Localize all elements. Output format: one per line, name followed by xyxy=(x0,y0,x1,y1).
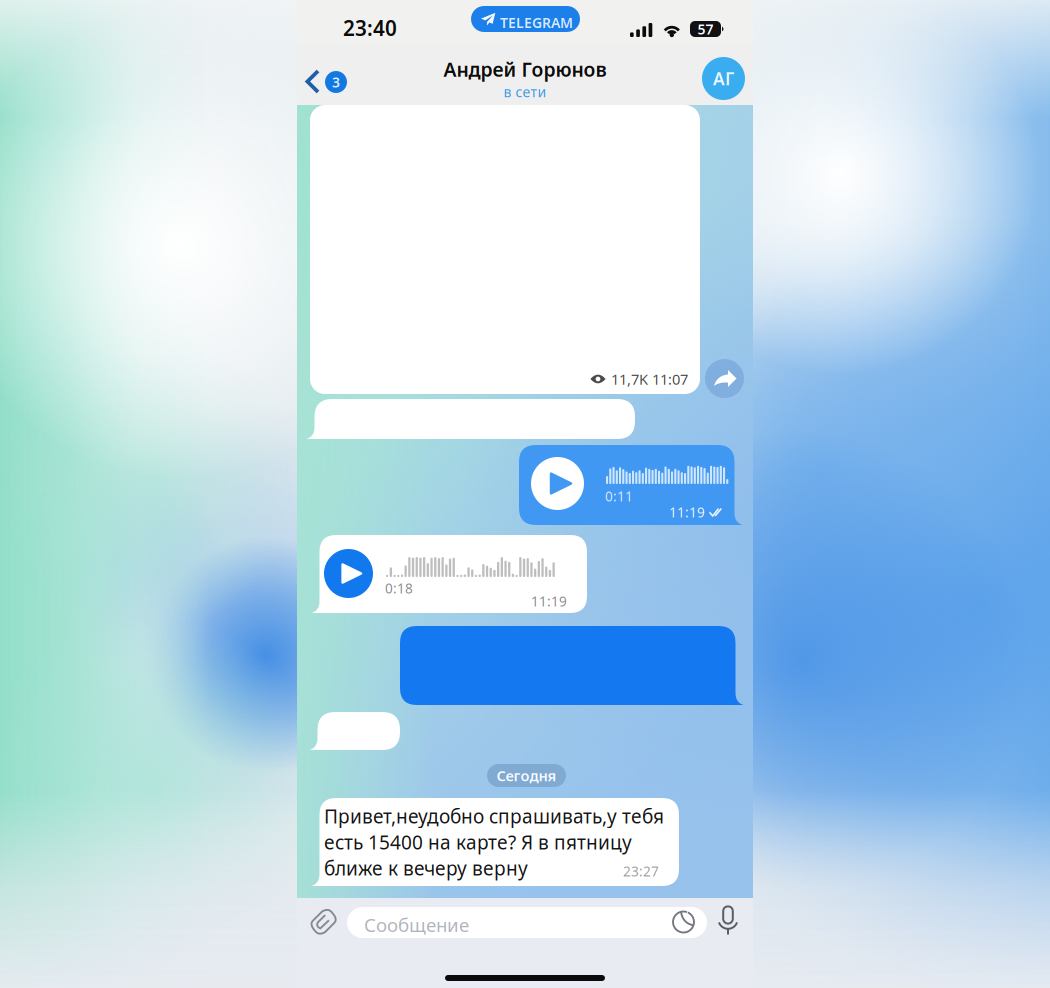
button[interactable]: Stickers xyxy=(672,909,698,935)
staticText: Привет,неудобно спрашивать,у тебя xyxy=(324,803,664,829)
button[interactable]: Profile xyxy=(702,57,745,100)
staticText: есть 15400 на карте? Я в пятницу xyxy=(324,829,632,855)
button[interactable]: Forward xyxy=(705,359,744,398)
button[interactable]: Record voice message xyxy=(716,905,740,937)
staticText: TELEGRAM xyxy=(500,13,573,32)
staticText: 57 xyxy=(697,19,713,39)
staticText: 0:11 xyxy=(605,487,633,505)
staticText: 11,7K 11:07 xyxy=(611,369,688,389)
button[interactable]: Play voice message xyxy=(324,549,373,598)
staticText: 11:19 xyxy=(531,592,567,610)
staticText: 23:40 xyxy=(343,14,397,42)
staticText: АГ xyxy=(713,67,734,90)
staticText: 11:19 xyxy=(669,503,705,521)
button[interactable]: Play voice message xyxy=(531,457,584,510)
staticText: Сообщение xyxy=(364,912,469,937)
staticText: в сети xyxy=(503,82,546,101)
staticText: 0:18 xyxy=(385,579,413,597)
staticText: 3 xyxy=(332,72,340,92)
button[interactable]: Back xyxy=(305,59,361,105)
button[interactable]: Message xyxy=(347,907,707,938)
staticText: Андрей Горюнов xyxy=(443,56,606,82)
staticText: 23:27 xyxy=(623,862,659,880)
staticText: ближе к вечеру верну xyxy=(324,855,528,881)
staticText: Сегодня xyxy=(496,765,556,785)
button[interactable]: Attach file xyxy=(311,908,338,936)
